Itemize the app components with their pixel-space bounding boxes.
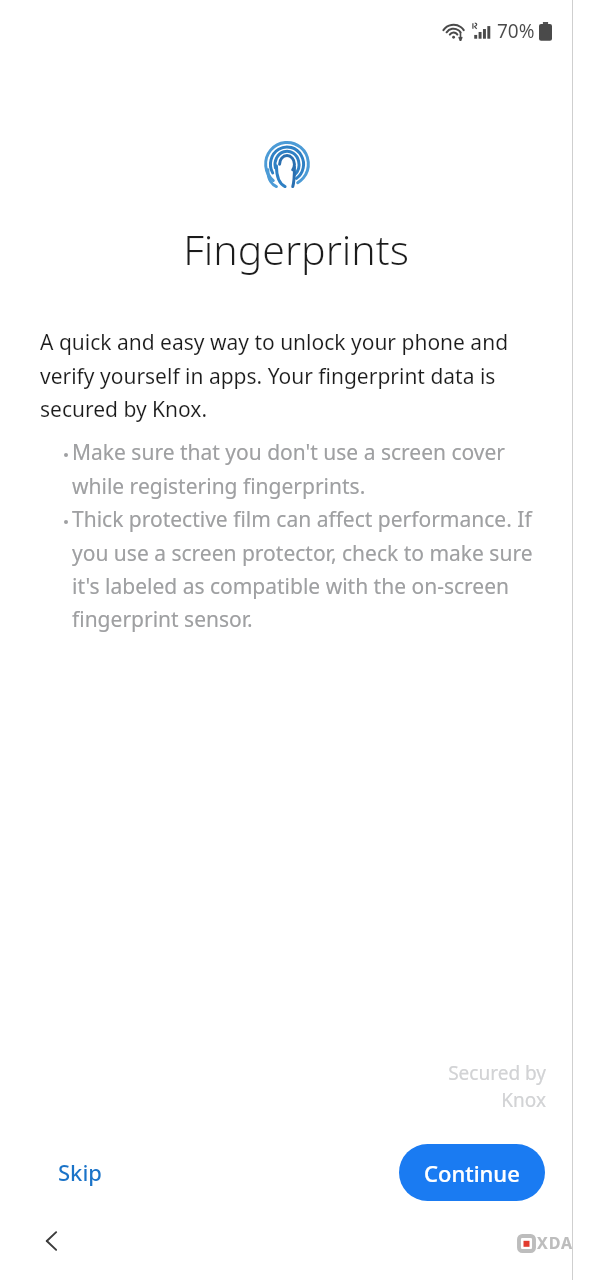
staticText: Continue [424, 1158, 520, 1188]
staticText: Thick protective film can affect perform… [72, 505, 559, 633]
staticText: Fingerprints [183, 221, 409, 277]
staticText: Skip [58, 1157, 102, 1187]
staticText: Secured by Knox [448, 1060, 546, 1113]
staticText: XDA [537, 1232, 574, 1254]
staticText: A quick and easy way to unlock your phon… [40, 328, 543, 423]
staticText: 70% [497, 18, 535, 44]
staticText: Make sure that you don't use a screen co… [72, 438, 559, 500]
button[interactable]: Skip [40, 1149, 120, 1195]
button[interactable]: Back [26, 1215, 78, 1267]
button[interactable]: Continue [399, 1144, 545, 1201]
